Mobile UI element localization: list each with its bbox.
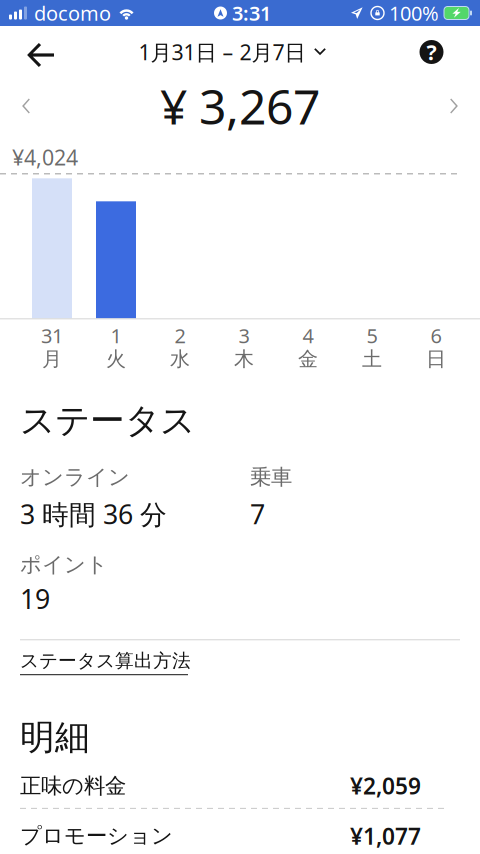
staticText: 3 bbox=[238, 322, 249, 349]
staticText: 1 bbox=[110, 322, 121, 349]
button[interactable]: Previous week bbox=[0, 78, 52, 134]
staticText: 明細 bbox=[20, 716, 90, 759]
staticText: 土 bbox=[362, 347, 382, 371]
staticText: 乗車 bbox=[250, 464, 292, 490]
staticText: ¥1,077 bbox=[350, 821, 421, 851]
staticText: 金 bbox=[298, 347, 318, 371]
staticText: 3 時間 36 分 bbox=[20, 496, 167, 532]
staticText: 2 bbox=[174, 322, 185, 349]
staticText: 31 bbox=[41, 322, 63, 349]
staticText: プロモーション bbox=[20, 823, 173, 849]
staticText: 7 bbox=[250, 496, 265, 532]
staticText: 5 bbox=[366, 322, 377, 349]
button[interactable]: 1月31日 – 2月7日 bbox=[138, 26, 326, 78]
staticText: ? bbox=[426, 38, 436, 66]
staticText: ¥2,059 bbox=[350, 771, 421, 801]
staticText: docomo bbox=[34, 0, 111, 26]
button[interactable]: Back bbox=[0, 26, 82, 78]
button[interactable]: ステータス算出方法 bbox=[20, 640, 191, 687]
staticText: ステータス算出方法 bbox=[20, 649, 191, 672]
button[interactable]: Next week bbox=[428, 78, 480, 134]
staticText: 水 bbox=[170, 347, 190, 371]
staticText: 6 bbox=[430, 322, 441, 349]
button[interactable]: Help bbox=[383, 26, 480, 78]
staticText: 日 bbox=[426, 347, 446, 371]
staticText: 3:31 bbox=[232, 0, 271, 26]
staticText: ¥4,024 bbox=[12, 143, 78, 171]
staticText: ポイント bbox=[20, 552, 108, 578]
staticText: 木 bbox=[234, 347, 254, 371]
staticText: 月 bbox=[42, 347, 62, 371]
staticText: 正味の料金 bbox=[20, 773, 126, 799]
staticText: ステータス bbox=[20, 399, 195, 442]
staticText: 100% bbox=[389, 0, 439, 26]
staticText: オンライン bbox=[20, 464, 130, 490]
staticText: 火 bbox=[106, 347, 126, 371]
staticText: 4 bbox=[302, 322, 313, 349]
staticText: 19 bbox=[20, 581, 50, 616]
staticText: 1月31日 – 2月7日 bbox=[138, 38, 305, 66]
staticText: ¥ 3,267 bbox=[160, 74, 320, 138]
